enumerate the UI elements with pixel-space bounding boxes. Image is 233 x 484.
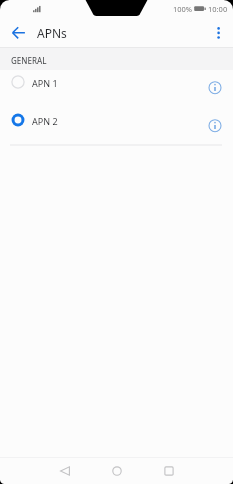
button[interactable]: APN 2 [0, 108, 233, 146]
button[interactable]: Home [104, 458, 130, 484]
staticText: APN 1 [32, 77, 58, 89]
button[interactable]: About APN 2 [203, 113, 227, 137]
staticText: 100% [173, 4, 193, 14]
staticText: APN 2 [32, 115, 58, 127]
staticText: GENERAL [11, 55, 47, 66]
button[interactable]: About APN 1 [203, 75, 227, 99]
button[interactable]: APN 1 [0, 70, 233, 108]
button[interactable]: More options [206, 20, 232, 46]
button[interactable]: Back [52, 458, 78, 484]
staticText: APNs [37, 25, 67, 41]
staticText: 10:00 [208, 4, 228, 14]
button[interactable]: Navigate up [6, 20, 32, 46]
button[interactable]: Recent apps [156, 458, 182, 484]
